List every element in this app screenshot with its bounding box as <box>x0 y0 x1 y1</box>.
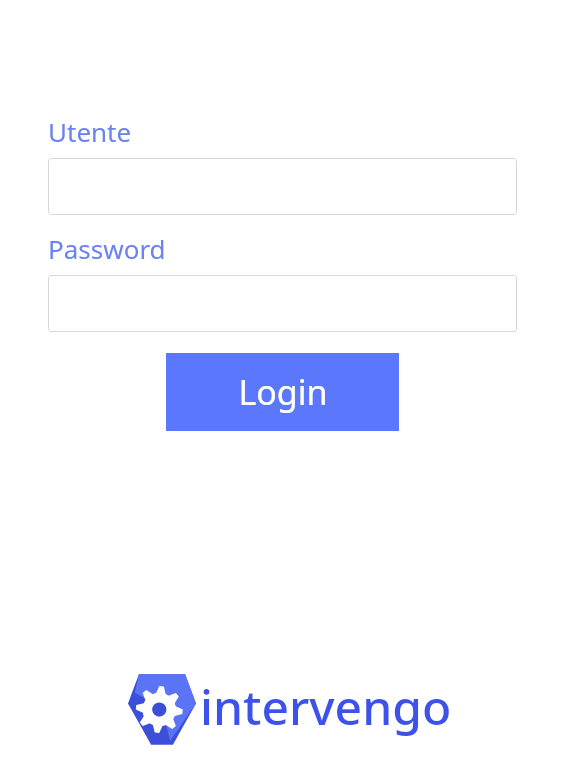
staticText: Login <box>238 369 328 415</box>
button[interactable] <box>48 158 517 215</box>
button[interactable] <box>48 275 517 332</box>
other: Intervengo logo <box>128 670 196 746</box>
staticText: Utente <box>48 114 132 149</box>
staticText: Password <box>48 231 166 266</box>
button[interactable]: Login <box>166 353 399 431</box>
staticText: intervengo <box>200 674 452 739</box>
